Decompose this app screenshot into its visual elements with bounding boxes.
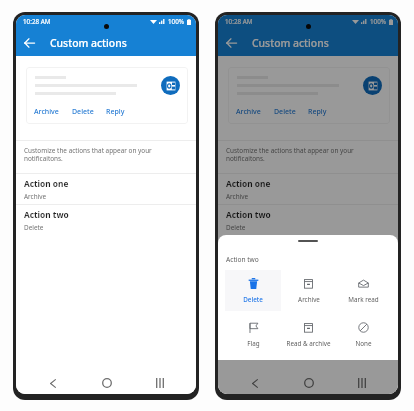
button[interactable]: Navigate up [218,29,245,56]
staticText: Archive [298,295,320,304]
staticText: 10:28 AM [225,17,253,26]
staticText: Mark read [348,295,379,304]
button[interactable]: Home [96,372,118,394]
button[interactable]: Home [298,372,320,394]
button[interactable]: Archive [34,107,59,117]
staticText: Reply [106,107,125,117]
staticText: Archive [24,192,47,201]
button[interactable]: Delete [72,107,94,117]
staticText: 10:28 AM [23,17,51,26]
staticText: Custom actions [50,36,127,50]
staticText: 100% [370,17,387,26]
staticText: Action two [24,209,69,220]
button[interactable]: Archive [236,107,261,117]
staticText: Delete [24,223,44,232]
staticText: Delete [243,295,263,304]
button[interactable]: Reply [106,107,125,117]
button[interactable]: Action one [218,174,398,204]
button[interactable]: Archive [281,270,336,311]
staticText: Customize the actions that appear on you… [24,146,156,163]
staticText: Customize the actions that appear on you… [226,146,358,163]
button[interactable]: Read & archive [281,314,336,355]
staticText: Read & archive [286,339,331,348]
button[interactable]: Action two [16,205,196,235]
button[interactable]: Delete [225,270,281,311]
staticText: None [355,339,372,348]
button[interactable]: Flag [225,314,281,355]
staticText: Reply [308,107,327,117]
button[interactable]: None [336,314,391,355]
button[interactable]: Mark read [336,270,391,311]
button[interactable]: Recent apps [149,372,171,394]
button[interactable]: Recent apps [351,372,373,394]
staticText: Archive [236,107,261,117]
staticText: Action one [24,178,69,189]
button[interactable]: Back [42,372,64,394]
staticText: Action two [226,209,271,220]
staticText: Delete [274,107,296,117]
staticText: Action two [226,255,259,264]
staticText: Custom actions [252,36,329,50]
button[interactable]: Action one [16,174,196,204]
staticText: Archive [226,192,249,201]
button[interactable]: Navigate up [16,29,43,56]
staticText: Action one [226,178,271,189]
button[interactable]: Back [244,372,266,394]
staticText: Archive [34,107,59,117]
button[interactable]: Delete [274,107,296,117]
button[interactable]: Action two [218,205,398,235]
staticText: 100% [168,17,185,26]
button[interactable]: Reply [308,107,327,117]
staticText: Delete [226,223,246,232]
staticText: Delete [72,107,94,117]
staticText: Flag [247,339,260,348]
